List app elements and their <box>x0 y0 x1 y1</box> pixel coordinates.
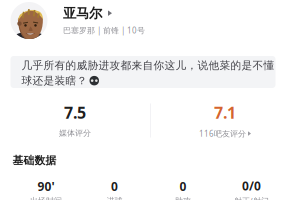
button[interactable]: 7.5 <box>0 102 150 138</box>
button[interactable]: 球员头像 <box>0 0 300 200</box>
button[interactable]: 亚马尔 <box>63 4 112 22</box>
staticText: 球还是装瞎？ <box>21 74 87 87</box>
staticText: 0 <box>111 178 118 194</box>
staticText: 亚马尔 <box>63 5 102 21</box>
staticText: 媒体评分 <box>59 128 91 138</box>
staticText: 7.5 <box>64 102 86 123</box>
staticText: 基础数据 <box>12 154 56 167</box>
staticText: 射正/射门 <box>234 195 269 200</box>
staticText: 助攻 <box>175 196 191 200</box>
staticText: 90' <box>37 178 54 194</box>
button[interactable]: 7.1 <box>150 102 300 139</box>
staticText: 7.1 <box>214 102 236 123</box>
staticText: 116吧友评分 <box>199 128 246 139</box>
staticText: 进球 <box>106 196 122 200</box>
staticText: 几乎所有的威胁进攻都来自你这儿，说他菜的是不懂 <box>21 59 274 72</box>
staticText: 出场时间 <box>30 196 62 200</box>
staticText: 0 <box>179 178 186 194</box>
staticText: 巴塞罗那 | 前锋 | 10号 <box>63 25 145 36</box>
staticText: 0/0 <box>242 178 261 194</box>
